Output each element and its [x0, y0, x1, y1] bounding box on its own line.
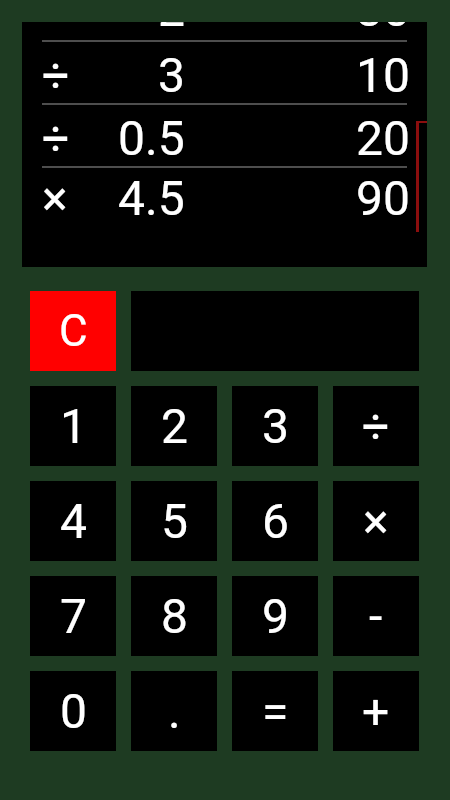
staticText: ÷	[42, 47, 70, 103]
staticText: 9	[262, 588, 289, 644]
staticText: 0	[60, 683, 87, 739]
staticText: .	[168, 683, 181, 739]
staticText: +	[362, 683, 390, 739]
staticText: ÷	[42, 110, 70, 166]
staticText: 1	[60, 398, 87, 454]
staticText: 2	[161, 398, 188, 454]
staticText: ×	[363, 493, 389, 549]
staticText: 5	[161, 493, 188, 549]
staticText: 3	[262, 398, 289, 454]
staticText: -	[369, 588, 383, 644]
staticText: 8	[161, 588, 188, 644]
staticText: ×	[42, 170, 68, 226]
staticText: =	[262, 683, 289, 739]
staticText: 4	[60, 493, 87, 549]
staticText: 7	[60, 588, 87, 644]
staticText: 6	[262, 493, 289, 549]
staticText: ÷	[362, 398, 390, 454]
staticText: 4.5	[118, 170, 185, 226]
staticText: 20	[356, 110, 410, 166]
staticText: 90	[356, 170, 410, 226]
staticText: 3	[158, 47, 185, 103]
staticText: 2	[158, 22, 185, 37]
staticText: 0.5	[118, 110, 185, 166]
staticText: 30	[356, 22, 410, 37]
staticText: 10	[356, 47, 410, 103]
staticText: C	[59, 305, 88, 357]
